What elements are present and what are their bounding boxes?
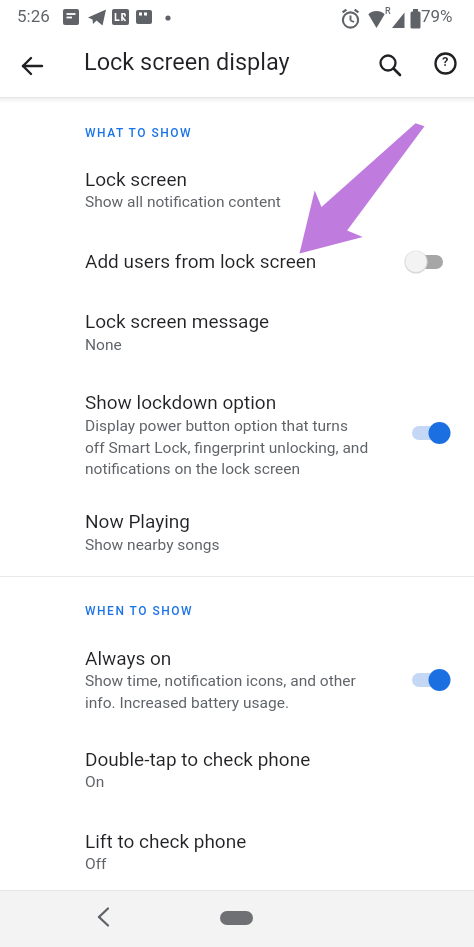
staticText: WHEN TO SHOW (85, 604, 194, 618)
button[interactable] (18, 52, 48, 80)
button[interactable] (0, 384, 474, 484)
staticText: Lock screen (85, 168, 188, 190)
staticText: Now Playing (85, 510, 190, 532)
staticText: Off (85, 855, 107, 873)
button[interactable] (89, 904, 117, 930)
staticText: 5:26 (17, 6, 50, 26)
button[interactable] (0, 242, 474, 284)
staticText: None (85, 336, 122, 354)
staticText: WHAT TO SHOW (85, 126, 193, 140)
button[interactable] (0, 160, 474, 222)
staticText: R (385, 6, 391, 17)
staticText: Show lockdown option (85, 391, 277, 413)
button[interactable] (220, 911, 253, 925)
button[interactable] (402, 249, 448, 275)
staticText: Add users from lock screen (85, 250, 317, 272)
button[interactable] (0, 503, 474, 565)
staticText: Lock screen display (84, 48, 290, 76)
button[interactable] (0, 302, 474, 364)
button[interactable] (408, 667, 454, 693)
staticText: Show nearby songs (85, 536, 220, 554)
staticText: Always on (85, 647, 172, 669)
button[interactable]: ? (433, 50, 461, 78)
button[interactable] (0, 740, 474, 802)
staticText: Double-tap to check phone (85, 748, 311, 770)
staticText: Show all notification content (85, 193, 281, 211)
staticText: Lock screen message (85, 310, 270, 332)
button[interactable] (0, 822, 474, 884)
button[interactable] (377, 52, 405, 80)
button[interactable] (408, 420, 454, 446)
staticText: On (85, 773, 105, 791)
button[interactable] (0, 640, 474, 720)
staticText: Display power button option that turns o… (85, 417, 369, 477)
staticText: Lift to check phone (85, 830, 247, 852)
staticText: 79% (421, 6, 453, 26)
staticText: Show time, notification icons, and other… (85, 672, 356, 711)
staticText: ? (442, 54, 449, 69)
